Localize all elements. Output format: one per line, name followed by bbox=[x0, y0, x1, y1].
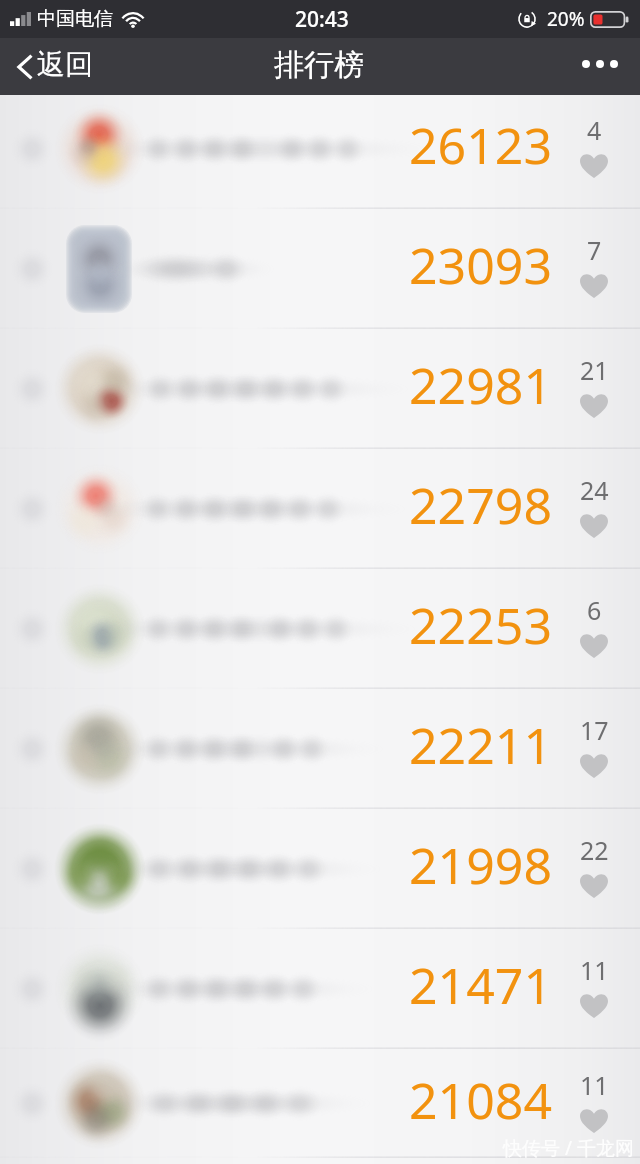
button[interactable]: 23093 bbox=[0, 209, 640, 329]
staticText: 22798 bbox=[409, 471, 552, 539]
staticText: 20:43 bbox=[295, 5, 349, 34]
staticText: 22981 bbox=[409, 351, 552, 419]
button[interactable]: Like bbox=[564, 809, 624, 929]
staticText: 排行榜 bbox=[274, 46, 364, 84]
staticText: 6 bbox=[587, 593, 602, 627]
staticText: 21084 bbox=[409, 1066, 552, 1134]
button[interactable]: 21084 bbox=[0, 1049, 640, 1158]
staticText: 17 bbox=[580, 713, 609, 747]
staticText: 22211 bbox=[409, 711, 552, 779]
button[interactable]: 26123 bbox=[0, 89, 640, 209]
staticText: 20% bbox=[547, 6, 585, 32]
staticText: 7 bbox=[587, 233, 602, 267]
staticText: 返回 bbox=[37, 47, 93, 82]
staticText: 21471 bbox=[409, 951, 552, 1019]
button[interactable]: 22981 bbox=[0, 329, 640, 449]
button[interactable]: 返回 bbox=[0, 41, 109, 92]
button[interactable]: Like bbox=[564, 569, 624, 689]
button[interactable]: 21998 bbox=[0, 809, 640, 929]
button[interactable]: Like bbox=[564, 1049, 624, 1158]
staticText: 22 bbox=[580, 833, 609, 867]
staticText: 4 bbox=[587, 113, 602, 147]
staticText: 22253 bbox=[409, 591, 552, 659]
staticText: 11 bbox=[580, 1068, 609, 1102]
staticText: 24 bbox=[580, 473, 609, 507]
button[interactable]: Like bbox=[564, 209, 624, 329]
staticText: 21 bbox=[580, 353, 609, 387]
button[interactable]: Like bbox=[564, 929, 624, 1049]
button[interactable]: Like bbox=[564, 329, 624, 449]
button[interactable]: 22211 bbox=[0, 689, 640, 809]
button[interactable]: Like bbox=[564, 689, 624, 809]
staticText: 26123 bbox=[409, 111, 552, 179]
button[interactable]: 21471 bbox=[0, 929, 640, 1049]
staticText: 21998 bbox=[409, 831, 552, 899]
staticText: 23093 bbox=[409, 231, 552, 299]
staticText: 11 bbox=[580, 953, 609, 987]
button[interactable]: Like bbox=[564, 449, 624, 569]
staticText: 快传号 / 千龙网 bbox=[503, 1135, 634, 1161]
staticText: 中国电信 bbox=[37, 7, 113, 31]
button[interactable]: Like bbox=[564, 89, 624, 209]
button[interactable]: More options bbox=[564, 47, 640, 87]
button[interactable]: 22253 bbox=[0, 569, 640, 689]
button[interactable]: 22798 bbox=[0, 449, 640, 569]
